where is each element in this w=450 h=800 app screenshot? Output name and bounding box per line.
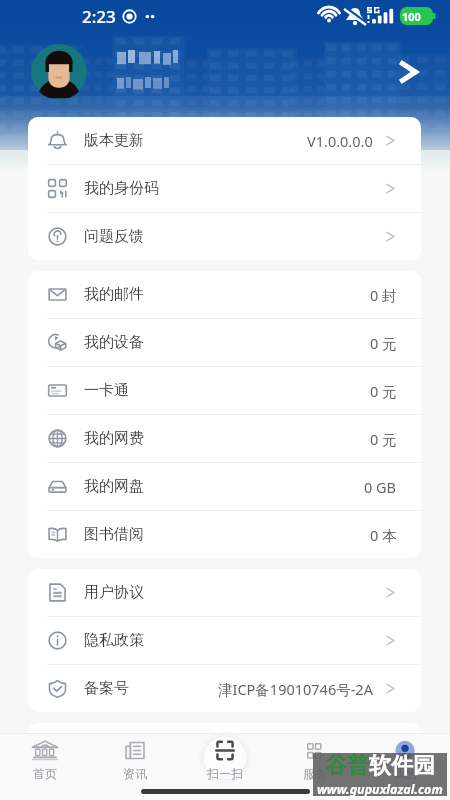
staticText: 我的网费: [84, 429, 144, 448]
staticText: 图书借阅: [84, 525, 144, 544]
button[interactable]: 我的: [360, 740, 450, 781]
staticText: 扫一扫: [207, 766, 243, 781]
staticText: V1.0.0.0.0: [307, 131, 373, 151]
button[interactable]: 用户协议: [28, 569, 421, 617]
button[interactable]: 我的邮件: [28, 271, 421, 319]
staticText: 资讯: [123, 766, 147, 781]
staticText: 我的网盘: [84, 477, 144, 496]
button[interactable]: Avatar: [31, 44, 87, 100]
staticText: 0 元: [370, 429, 397, 449]
button[interactable]: Open profile: [387, 53, 425, 91]
staticText: 100: [402, 9, 421, 24]
staticText: 首页: [33, 766, 57, 781]
button[interactable]: 首页: [0, 740, 90, 781]
staticText: 0 封: [370, 285, 397, 305]
staticText: 我的设备: [84, 333, 144, 352]
staticText: 我的: [393, 766, 417, 781]
button[interactable]: 服务: [270, 740, 360, 781]
button[interactable]: 我的设备: [28, 319, 421, 367]
button[interactable]: 问题反馈: [28, 213, 421, 260]
button[interactable]: 隐私政策: [28, 617, 421, 665]
staticText: 0 元: [370, 333, 397, 353]
button[interactable]: 我的身份码: [28, 165, 421, 213]
staticText: 津ICP备19010746号-2A: [218, 679, 373, 699]
button[interactable]: 一卡通: [28, 367, 421, 415]
button[interactable]: 我的网盘: [28, 463, 421, 511]
button[interactable]: 我的网费: [28, 415, 421, 463]
staticText: 谷普: [325, 752, 369, 780]
staticText: 版本更新: [84, 131, 144, 150]
button[interactable]: 退出登录: [28, 723, 421, 770]
staticText: 一卡通: [84, 381, 129, 400]
staticText: 0 GB: [364, 477, 397, 497]
staticText: 我的邮件: [84, 285, 144, 304]
staticText: 隐私政策: [84, 631, 144, 650]
button[interactable]: 资讯: [90, 740, 180, 781]
staticText: 0 本: [370, 525, 397, 545]
staticText: 用户协议: [84, 583, 144, 602]
staticText: 服务: [303, 766, 327, 781]
staticText: 备案号: [84, 679, 129, 698]
staticText: 我的身份码: [84, 179, 159, 198]
button[interactable]: 图书借阅: [28, 511, 421, 558]
staticText: www.gupuxlazal.com: [317, 781, 443, 798]
staticText: 2:23: [82, 5, 116, 28]
button[interactable]: 备案号: [28, 665, 421, 712]
staticText: 问题反馈: [84, 227, 144, 246]
staticText: 0 元: [370, 381, 397, 401]
staticText: 软件园: [369, 752, 435, 780]
staticText: 退出登录: [84, 737, 144, 756]
button[interactable]: 扫一扫: [180, 740, 270, 781]
button[interactable]: 版本更新: [28, 117, 421, 165]
